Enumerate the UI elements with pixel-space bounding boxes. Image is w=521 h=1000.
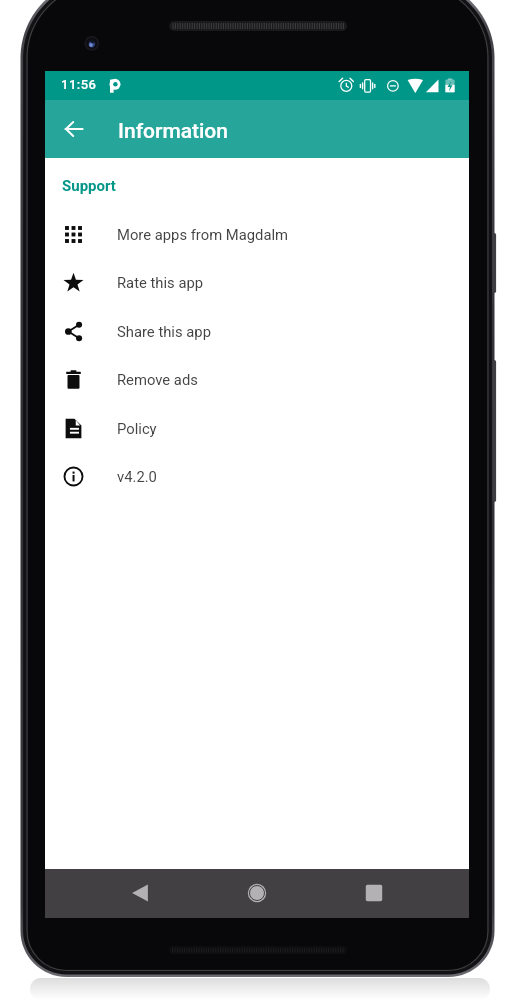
staticText: Rate this app	[117, 274, 204, 291]
button[interactable]: Navigate up	[50, 105, 98, 153]
staticText: Support	[62, 177, 116, 195]
staticText: Information	[118, 119, 228, 144]
button[interactable]: Remove ads	[45, 355, 469, 404]
staticText: Share this app	[117, 323, 211, 340]
button[interactable]: Home	[233, 869, 281, 917]
button[interactable]: Policy	[45, 404, 469, 453]
staticText: More apps from Magdalm	[117, 226, 289, 243]
button[interactable]: Back	[116, 869, 164, 917]
staticText: 11:56	[61, 77, 97, 92]
staticText: Remove ads	[117, 371, 198, 388]
button[interactable]: Recent apps	[350, 869, 398, 917]
button[interactable]: More apps from Magdalm	[45, 210, 469, 259]
button[interactable]: Rate this app	[45, 258, 469, 307]
button[interactable]: Share this app	[45, 307, 469, 356]
staticText: v4.2.0	[117, 468, 157, 485]
button[interactable]: v4.2.0	[45, 452, 469, 501]
staticText: Policy	[117, 420, 157, 437]
